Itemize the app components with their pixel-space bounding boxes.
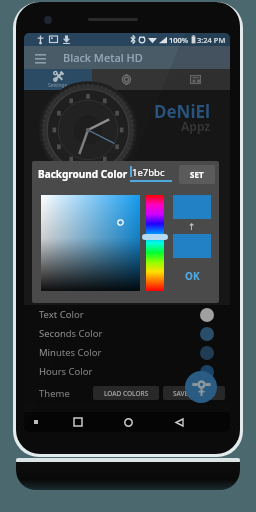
staticText: 100% (169, 35, 189, 45)
button[interactable]: Menu (31, 49, 49, 67)
staticText: SAVE COLORS (173, 389, 216, 398)
staticText: Hours Color (39, 365, 93, 378)
button[interactable]: Seconds Color (24, 324, 230, 343)
button[interactable]: Text Color (24, 305, 230, 324)
button[interactable]: SAVE COLORS (163, 386, 225, 400)
button[interactable]: OK (173, 266, 211, 286)
staticText: LOAD COLORS (104, 389, 149, 398)
button[interactable]: Complications (161, 69, 230, 90)
staticText: Black Metal HD (63, 50, 143, 65)
button[interactable]: SET (179, 165, 215, 184)
button[interactable]: Settings (24, 69, 92, 90)
button[interactable]: Back (169, 412, 189, 432)
button[interactable]: Recents (68, 412, 88, 432)
staticText: 3:24 PM (197, 35, 226, 45)
button[interactable]: Minutes Color (24, 343, 230, 362)
button[interactable]: Home (118, 412, 138, 432)
staticText: Theme (39, 387, 70, 400)
staticText: Background Color (38, 167, 128, 181)
staticText: Seconds Color (39, 327, 103, 340)
staticText: DeNiEl (154, 100, 211, 123)
staticText: Text Color (39, 308, 84, 321)
staticText: Minutes Color (39, 346, 102, 359)
staticText: ↑ (188, 222, 196, 232)
staticText: Settings (48, 82, 68, 89)
button[interactable]: Hours Color (24, 362, 230, 381)
staticText: Appz (181, 118, 211, 134)
staticText: SET (190, 169, 204, 180)
staticText: OK (185, 269, 200, 283)
staticText: 1e7bbc (132, 166, 165, 179)
button[interactable]: Watch face (92, 69, 161, 90)
button[interactable]: LOAD COLORS (93, 386, 159, 400)
button[interactable]: Share (185, 371, 217, 403)
